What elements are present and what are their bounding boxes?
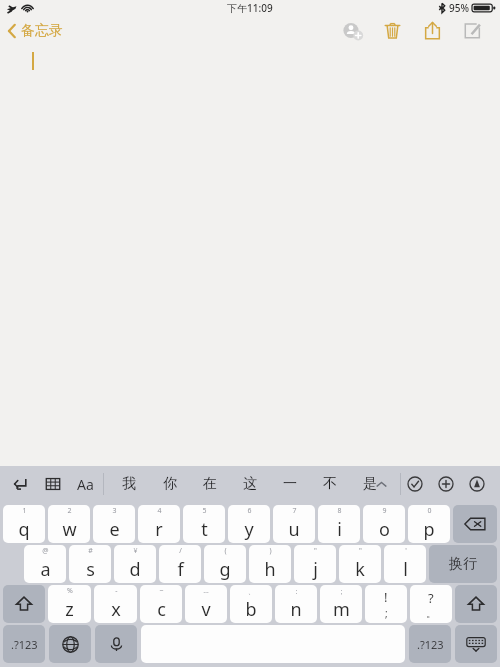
button[interactable]: Switch keyboard xyxy=(49,625,91,663)
button[interactable]: 5 xyxy=(183,505,225,543)
staticText: # xyxy=(88,546,93,556)
button[interactable]: Aa xyxy=(70,469,100,499)
button[interactable]: Confirm xyxy=(402,471,428,497)
staticText: v xyxy=(201,597,211,622)
button[interactable]: Backspace xyxy=(453,505,497,543)
staticText: ~ xyxy=(159,586,164,596)
button[interactable]: Share xyxy=(412,16,452,45)
button[interactable]: 0 xyxy=(408,505,450,543)
button[interactable]: ¥ xyxy=(114,545,156,583)
button[interactable]: … xyxy=(185,585,227,623)
button[interactable]: ' xyxy=(384,545,426,583)
staticText: 下午11:09 xyxy=(227,1,273,15)
button[interactable]: ( xyxy=(204,545,246,583)
button[interactable]: .?123 xyxy=(3,625,45,663)
staticText: - xyxy=(115,586,118,596)
staticText: 一 xyxy=(283,475,297,493)
button[interactable]: / xyxy=(159,545,201,583)
staticText: 、 xyxy=(248,587,255,596)
button[interactable]: " xyxy=(294,545,336,583)
staticText: w xyxy=(62,517,77,542)
button[interactable]: # xyxy=(69,545,111,583)
staticText: y xyxy=(244,517,254,542)
staticText: 8 xyxy=(337,506,342,516)
button[interactable]: Handwriting xyxy=(464,471,490,497)
staticText: i xyxy=(337,517,342,542)
staticText: ? xyxy=(428,589,434,607)
button[interactable]: 备忘录 xyxy=(0,19,71,43)
staticText: 3 xyxy=(112,506,117,516)
staticText: … xyxy=(203,586,209,596)
staticText: " xyxy=(314,546,317,556)
staticText: Aa xyxy=(77,475,94,494)
button[interactable]: 我 xyxy=(108,469,149,499)
staticText: p xyxy=(423,517,435,542)
staticText: 我 xyxy=(122,475,136,493)
button[interactable]: 9 xyxy=(363,505,405,543)
button[interactable]: Shift xyxy=(3,585,45,623)
button[interactable]: 是 xyxy=(350,469,390,499)
button[interactable]: 在 xyxy=(190,469,230,499)
staticText: d xyxy=(129,557,141,582)
button[interactable]: % xyxy=(48,585,91,623)
staticText: 1 xyxy=(22,506,27,516)
button[interactable]: Dictation xyxy=(95,625,137,663)
staticText: j xyxy=(313,557,318,582)
button[interactable]: ； xyxy=(320,585,362,623)
staticText: 6 xyxy=(247,506,252,516)
button[interactable]: 4 xyxy=(138,505,180,543)
staticText: .?123 xyxy=(11,637,38,652)
button[interactable]: Shift xyxy=(455,585,497,623)
staticText: 不 xyxy=(323,475,337,493)
staticText: 9 xyxy=(382,506,387,516)
staticText: b xyxy=(245,597,257,622)
button[interactable]: ) xyxy=(249,545,291,583)
button[interactable]: 6 xyxy=(228,505,270,543)
button[interactable]: 1 xyxy=(3,505,45,543)
staticText: 95% xyxy=(449,1,469,15)
button[interactable]: ： xyxy=(275,585,317,623)
staticText: 4 xyxy=(157,506,162,516)
button[interactable]: 换行 xyxy=(429,545,497,583)
staticText: l xyxy=(403,557,408,582)
button[interactable]: Add people xyxy=(332,16,372,45)
button[interactable]: 2 xyxy=(48,505,90,543)
button[interactable]: .?123 xyxy=(409,625,451,663)
button[interactable]: - xyxy=(94,585,137,623)
button[interactable]: ~ xyxy=(140,585,182,623)
staticText: c xyxy=(157,597,166,622)
button[interactable]: Delete xyxy=(372,16,412,45)
staticText: k xyxy=(355,557,365,582)
staticText: r xyxy=(155,517,163,542)
staticText: @ xyxy=(42,546,49,556)
button[interactable]: 一 xyxy=(270,469,310,499)
button[interactable]: 8 xyxy=(318,505,360,543)
button[interactable]: 、 xyxy=(230,585,272,623)
staticText: n xyxy=(290,597,302,622)
staticText: q xyxy=(18,517,30,542)
staticText: 换行 xyxy=(449,555,477,573)
button[interactable]: 3 xyxy=(93,505,135,543)
button[interactable]: 7 xyxy=(273,505,315,543)
button[interactable]: 你 xyxy=(149,469,190,499)
button[interactable]: ? xyxy=(410,585,452,623)
staticText: t xyxy=(201,517,208,542)
button[interactable]: 不 xyxy=(310,469,350,499)
staticText: .?123 xyxy=(417,637,444,652)
button[interactable]: Add xyxy=(433,471,459,497)
button[interactable]: Compose xyxy=(452,16,492,45)
button[interactable]: ! xyxy=(365,585,407,623)
staticText: 是 xyxy=(363,475,377,493)
staticText: a xyxy=(40,557,51,582)
staticText: u xyxy=(288,517,300,542)
button[interactable]: Expand candidates xyxy=(370,470,392,498)
button[interactable]: " xyxy=(339,545,381,583)
staticText: f xyxy=(177,557,184,582)
button[interactable]: @ xyxy=(24,545,66,583)
staticText: ； xyxy=(338,587,345,596)
button[interactable]: Table xyxy=(40,471,66,497)
button[interactable]: 这 xyxy=(230,469,270,499)
button[interactable]: Undo xyxy=(8,471,34,497)
button[interactable]: Hide keyboard xyxy=(455,625,497,663)
